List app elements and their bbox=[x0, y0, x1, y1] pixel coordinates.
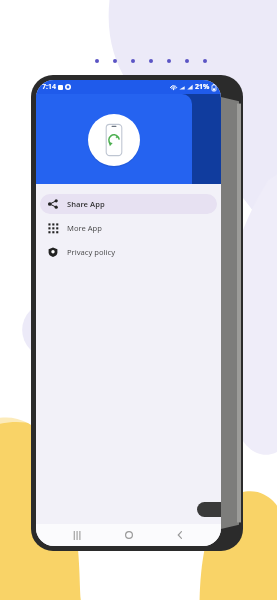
staticText: 21% bbox=[195, 82, 210, 92]
button[interactable]: More App bbox=[40, 218, 217, 238]
staticText: More App bbox=[67, 223, 102, 233]
button[interactable]: Home bbox=[119, 525, 139, 545]
staticText: 7:14 bbox=[42, 82, 56, 92]
button[interactable]: Recents bbox=[67, 525, 87, 545]
button[interactable]: Share App bbox=[40, 194, 217, 214]
button[interactable]: Back bbox=[170, 525, 190, 545]
button[interactable]: Privacy policy bbox=[40, 242, 217, 262]
staticText: Privacy policy bbox=[67, 247, 115, 257]
staticText: Share App bbox=[67, 199, 105, 209]
